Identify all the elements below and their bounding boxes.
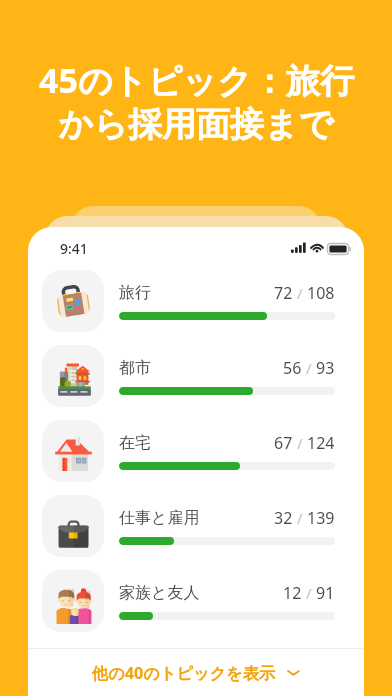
staticText: / (302, 583, 316, 603)
button[interactable]: 在宅 (28, 413, 364, 488)
staticText: 45のトピック：旅行 (39, 57, 354, 103)
button[interactable]: 都市 (28, 338, 364, 413)
staticText: 56 (283, 357, 302, 379)
staticText: / (302, 358, 316, 378)
staticText: から採用面接まで (58, 103, 334, 146)
staticText: 他の40のトピックを表示 (92, 662, 276, 684)
staticText: 139 (307, 507, 335, 529)
staticText: 旅行 (119, 283, 151, 303)
staticText: 67 (274, 432, 293, 454)
staticText: 124 (307, 432, 335, 454)
staticText: 都市 (119, 358, 151, 378)
staticText: / (293, 283, 307, 303)
staticText: 12 (283, 582, 302, 604)
button[interactable]: 旅行 (28, 263, 364, 338)
button[interactable]: 家族と友人 (28, 563, 364, 638)
staticText: 32 (274, 507, 293, 529)
button[interactable]: 他の40のトピックを表示 (28, 649, 364, 696)
staticText: 72 (274, 282, 293, 304)
staticText: 仕事と雇用 (119, 508, 200, 528)
staticText: 108 (307, 282, 335, 304)
staticText: 93 (316, 357, 335, 379)
staticText: / (293, 508, 307, 528)
button[interactable]: 仕事と雇用 (28, 488, 364, 563)
staticText: 在宅 (119, 433, 151, 453)
staticText: / (293, 433, 307, 453)
staticText: 9:41 (60, 239, 88, 258)
staticText: 家族と友人 (119, 583, 200, 603)
staticText: 91 (316, 582, 335, 604)
